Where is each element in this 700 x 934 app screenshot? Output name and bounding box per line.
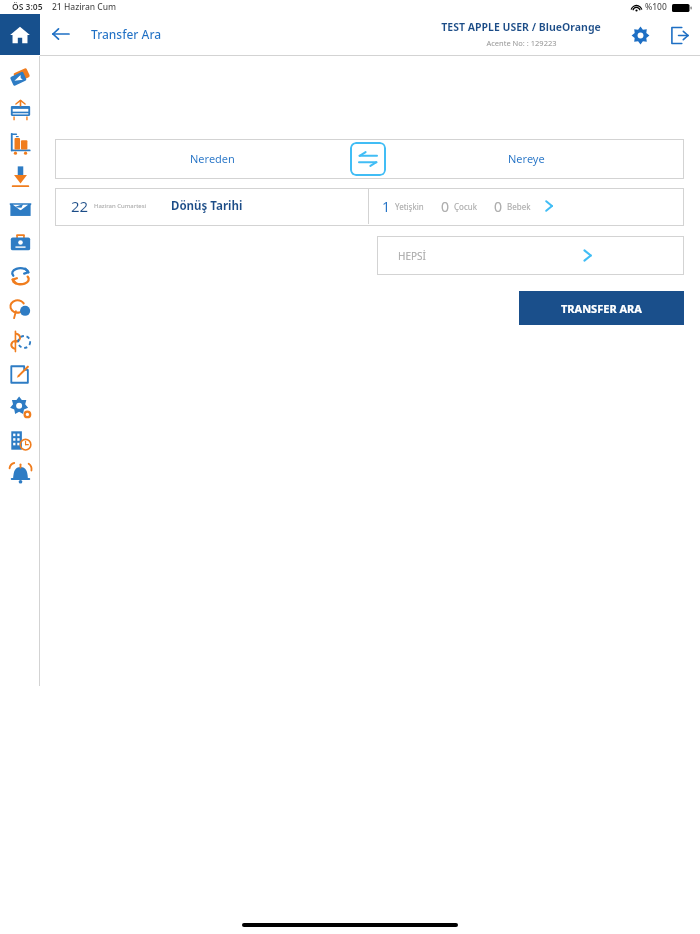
button[interactable]: TEST APPLE USER / BlueOrange — [400, 20, 642, 48]
button[interactable]: 22 — [55, 188, 368, 224]
staticText: Nereden — [190, 151, 235, 166]
button[interactable]: Otel — [4, 95, 36, 125]
staticText: Yetişkin — [395, 201, 424, 212]
staticText: Çocuk — [454, 201, 477, 212]
staticText: TEST APPLE USER / BlueOrange — [441, 20, 601, 34]
button[interactable]: Geri — [46, 20, 76, 48]
button[interactable]: TRANSFER ARA — [519, 291, 684, 325]
staticText: Bebek — [507, 201, 531, 212]
staticText: Acente No: : 129223 — [486, 38, 557, 48]
staticText: 0 — [441, 197, 450, 216]
button[interactable]: Çanta — [4, 227, 36, 257]
button[interactable]: Rezervasyon — [4, 359, 36, 389]
staticText: 0 — [494, 197, 503, 216]
button[interactable]: Çıkış — [665, 21, 693, 49]
button[interactable]: 1 — [369, 188, 683, 224]
button[interactable]: Değişim — [4, 260, 36, 290]
button[interactable]: Ayarlar — [626, 21, 654, 49]
staticText: Transfer Ara — [91, 26, 162, 42]
button[interactable]: Uçak Bileti — [4, 62, 36, 92]
staticText: %100 — [645, 1, 667, 13]
staticText: Dönüş Tarihi — [171, 198, 243, 214]
button[interactable]: Tur — [4, 128, 36, 158]
button[interactable]: HEPSİ — [377, 236, 684, 275]
staticText: Haziran Cumartesi — [94, 202, 147, 210]
staticText: Nereye — [508, 151, 545, 166]
button[interactable]: Ayarlar — [4, 392, 36, 422]
staticText: 22 — [71, 196, 89, 216]
staticText: 1 — [382, 197, 391, 216]
button[interactable]: Finans — [4, 326, 36, 356]
button[interactable]: Destek — [4, 293, 36, 323]
button[interactable]: Nereden — [55, 139, 369, 177]
button[interactable]: Nereye — [369, 139, 684, 177]
button[interactable]: Bildirimler — [4, 458, 36, 488]
staticText: 21 Haziran Cum — [52, 1, 117, 13]
button[interactable]: Raporlar — [4, 425, 36, 455]
button[interactable]: Mesajlar — [4, 194, 36, 224]
button[interactable]: Yönü değiştir — [350, 142, 386, 176]
staticText: HEPSİ — [398, 249, 426, 263]
staticText: TRANSFER ARA — [561, 301, 642, 316]
staticText: ÖS 3:05 — [12, 1, 43, 13]
button[interactable]: Ana Sayfa — [0, 14, 40, 55]
button[interactable]: Transfer — [4, 161, 36, 191]
